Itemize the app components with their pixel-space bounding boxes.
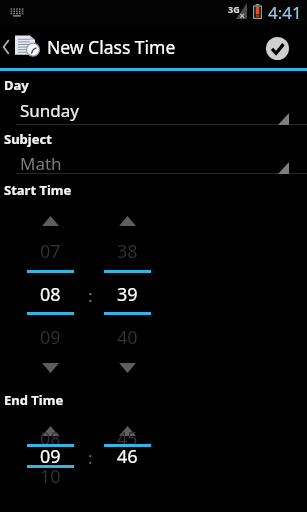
button[interactable]: Decrement [27,362,74,373]
button[interactable]: Sunday [0,93,307,120]
staticText: 09 [40,444,61,466]
staticText: New Class Time [47,35,176,59]
button[interactable]: 39 [104,282,151,304]
staticText: 10 [40,464,61,485]
staticText: 40 [117,325,138,346]
staticText: 07 [40,239,61,260]
staticText: 3G [228,3,240,15]
button[interactable]: Increment [104,425,151,436]
staticText: 46 [117,444,138,466]
staticText: 08 [40,282,61,304]
button[interactable]: 46 [104,444,151,466]
staticText: 09 [40,325,61,346]
staticText: 38 [117,239,138,260]
staticText: 39 [117,282,138,304]
staticText: Sunday [20,99,80,122]
button[interactable]: Decrement [104,362,151,373]
button[interactable]: Done [259,25,298,68]
staticText: : [88,446,93,464]
button[interactable]: Increment [104,215,151,226]
button[interactable]: Navigate up [0,25,44,68]
staticText: End Time [4,391,64,409]
button[interactable]: Increment [27,425,74,436]
staticText: 4:41 [268,1,302,24]
button[interactable]: 09 [27,444,74,466]
button[interactable]: 08 [27,282,74,304]
staticText: Math [20,152,62,175]
button[interactable]: Math [0,146,307,173]
staticText: 45 [117,426,138,447]
staticText: Start Time [4,181,72,199]
button[interactable]: Increment [27,215,74,226]
staticText: Day [4,76,29,94]
staticText: 08 [40,426,61,447]
staticText: : [88,284,93,302]
staticText: Subject [4,130,52,148]
